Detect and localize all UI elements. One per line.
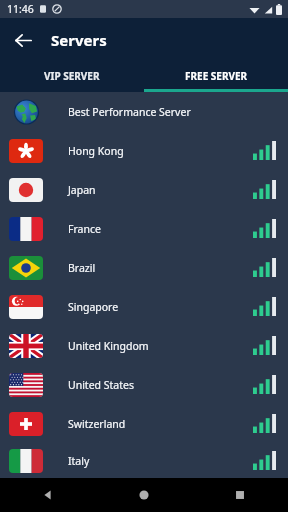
staticText: Hong Kong	[68, 144, 253, 158]
button[interactable]: Hong Kong	[0, 131, 288, 170]
staticText: France	[68, 222, 253, 236]
button[interactable]: Back	[8, 25, 38, 55]
staticText: Switzerland	[68, 417, 253, 431]
button[interactable]: Japan	[0, 170, 288, 209]
staticText: FREE SERVER	[185, 69, 248, 83]
button[interactable]: Home	[96, 478, 192, 512]
button[interactable]: Switzerland	[0, 404, 288, 443]
button[interactable]: Singapore	[0, 287, 288, 326]
button[interactable]: Italy	[0, 443, 288, 478]
staticText: Singapore	[68, 300, 253, 314]
staticText: Best Performance Server	[68, 105, 276, 119]
button[interactable]: FREE SERVER	[144, 62, 288, 89]
staticText: United States	[68, 378, 253, 392]
button[interactable]: Back	[0, 478, 96, 512]
button[interactable]: VIP SERVER	[0, 62, 144, 89]
button[interactable]: Brazil	[0, 248, 288, 287]
staticText: United Kingdom	[68, 339, 253, 353]
staticText: Japan	[68, 183, 253, 197]
staticText: Italy	[68, 454, 253, 468]
staticText: VIP SERVER	[44, 69, 100, 83]
button[interactable]: Best Performance Server	[0, 92, 288, 131]
button[interactable]: France	[0, 209, 288, 248]
staticText: Servers	[51, 30, 107, 50]
button[interactable]: Recent apps	[192, 478, 288, 512]
staticText: Brazil	[68, 261, 253, 275]
button[interactable]: United States	[0, 365, 288, 404]
staticText: 11:46	[7, 2, 34, 16]
button[interactable]: United Kingdom	[0, 326, 288, 365]
